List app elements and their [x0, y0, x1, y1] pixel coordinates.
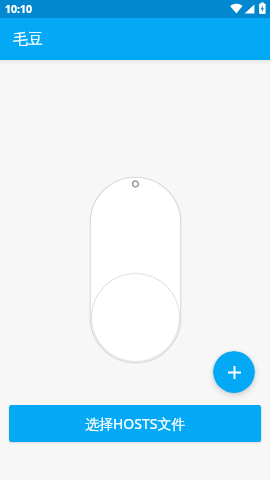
staticText: 10:10 [5, 2, 32, 16]
button[interactable]: Toggle hosts switch [89, 176, 182, 364]
button[interactable]: 选择HOSTS文件 [9, 405, 261, 442]
staticText: 毛豆 [13, 30, 43, 49]
button[interactable]: Add hosts entry [213, 351, 255, 393]
staticText: 选择HOSTS文件 [85, 414, 186, 433]
